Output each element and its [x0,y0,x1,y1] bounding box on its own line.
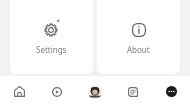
button[interactable]: More [152,76,190,107]
button[interactable]: Home [0,76,38,107]
button[interactable]: Messages [114,76,152,107]
button[interactable]: Settings [10,0,93,74]
button[interactable]: Shorts [38,76,76,107]
staticText: Settings [36,44,67,55]
staticText: About [127,44,150,55]
button[interactable]: About [97,0,180,74]
button[interactable]: Profile [76,76,114,107]
